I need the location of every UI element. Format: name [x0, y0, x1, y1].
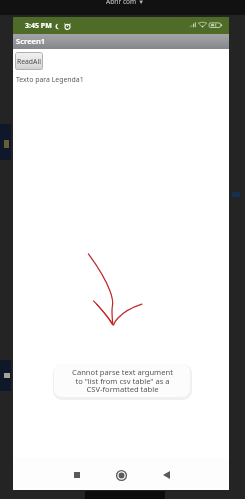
button[interactable]: Abrir com ▾	[94, 0, 154, 7]
button[interactable]: Cannot parse text argument to "list from…	[54, 364, 190, 397]
staticText: 3:45 PM	[25, 21, 52, 31]
staticText: Abrir com ▾	[106, 0, 143, 6]
button[interactable]: ReadAll	[15, 52, 43, 70]
button[interactable]: Recent apps	[68, 466, 86, 484]
button[interactable]: Back	[157, 466, 175, 484]
button[interactable]: Home	[112, 466, 130, 484]
staticText: Screen1	[16, 36, 46, 46]
staticText: Texto para Legenda1	[16, 75, 84, 84]
staticText: ReadAll	[17, 57, 41, 66]
staticText: Cannot parse text argument to "list from…	[72, 367, 173, 394]
